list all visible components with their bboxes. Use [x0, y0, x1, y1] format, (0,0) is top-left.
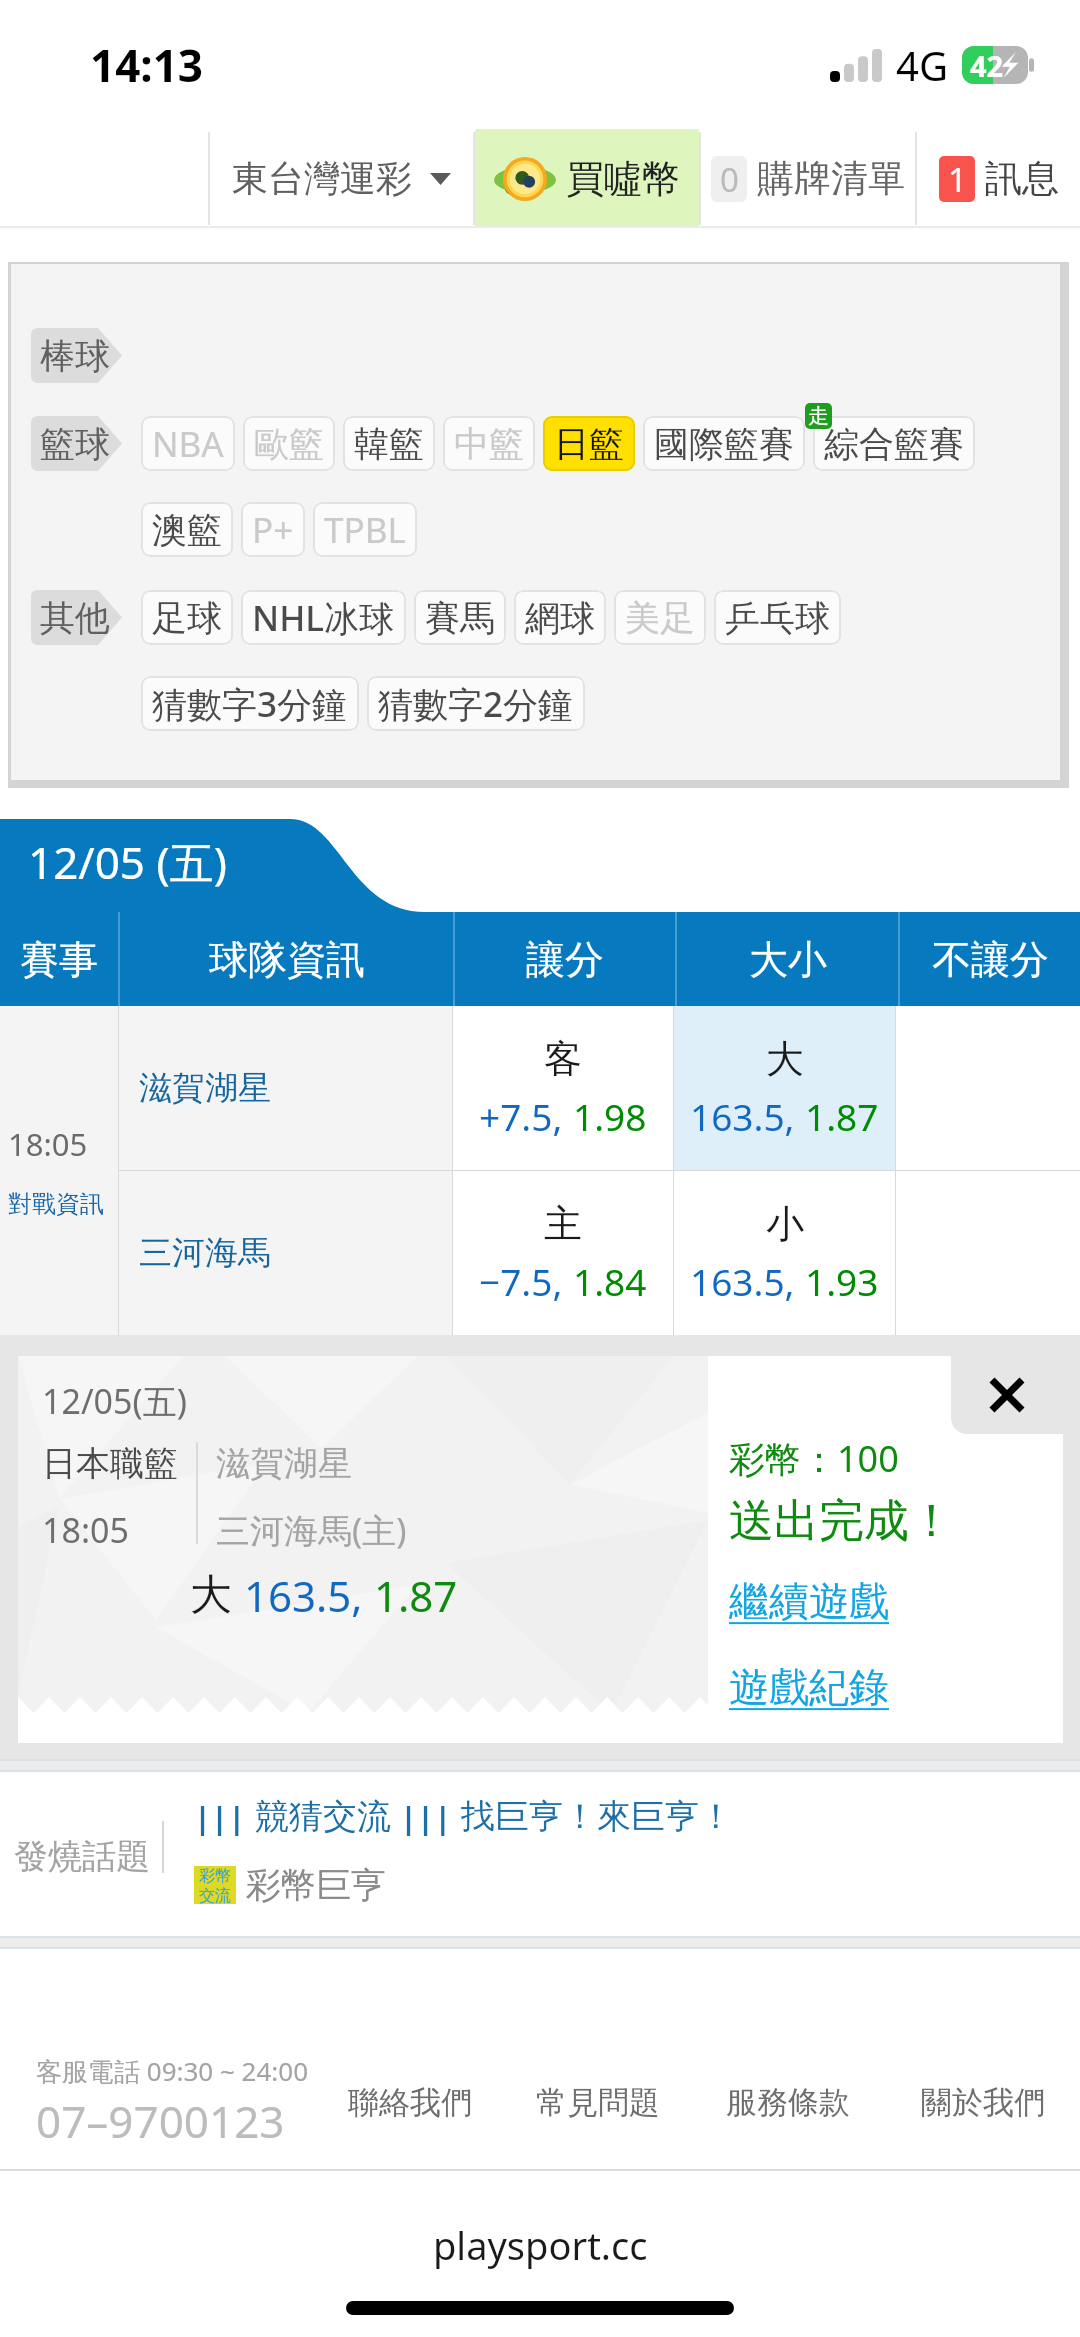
button[interactable]: 澳籃 — [141, 502, 233, 557]
button[interactable]: 常見問題 — [536, 2083, 660, 2122]
staticText: 乒乓球 — [725, 596, 830, 640]
staticText: 買噓幣 — [566, 155, 680, 203]
staticText: 07–9700123 — [36, 2091, 285, 2151]
staticText: 賽事 — [20, 935, 98, 984]
staticText: 1.84 — [573, 1256, 647, 1306]
button[interactable]: 0 — [701, 129, 915, 228]
staticText: playsport.cc — [433, 2219, 648, 2271]
staticText: 國際籃賽 — [654, 422, 794, 466]
button[interactable]: 遊戲紀錄 — [729, 1662, 889, 1712]
staticText: 1.93 — [805, 1256, 879, 1306]
staticText: 韓籃 — [354, 422, 424, 466]
button[interactable]: 三河海馬 — [119, 1171, 452, 1335]
button[interactable]: 猜數字3分鐘 — [141, 676, 359, 731]
staticText: 小 — [766, 1200, 804, 1248]
button[interactable]: Close — [951, 1356, 1063, 1434]
button[interactable]: 美足 — [614, 590, 706, 645]
staticText: 大 — [190, 1569, 232, 1622]
staticText: 日本職籃 — [42, 1442, 178, 1485]
staticText: 交流 — [199, 1886, 231, 1904]
button[interactable]: 猜數字2分鐘 — [367, 676, 585, 731]
button[interactable]: 韓籃 — [343, 416, 435, 471]
staticText: 棒球 — [40, 334, 110, 378]
staticText: 澳籃 — [152, 508, 222, 552]
staticText: NBA — [152, 420, 224, 468]
staticText: 東台灣運彩 — [232, 156, 412, 201]
button[interactable]: 中籃 — [443, 416, 535, 471]
staticText: 滋賀湖星 — [139, 1067, 271, 1109]
button[interactable]: 服務條款 — [726, 2083, 850, 2122]
staticText: 彩幣 — [199, 1866, 231, 1886]
button[interactable]: 主 — [453, 1171, 673, 1335]
staticText: 走 — [808, 403, 829, 429]
button[interactable]: 關於我們 — [921, 2083, 1045, 2122]
staticText: 彩幣巨亨 — [246, 1863, 386, 1907]
button[interactable]: 小 — [674, 1171, 895, 1335]
staticText: 訊息 — [985, 155, 1059, 202]
staticText: 日籃 — [554, 422, 624, 466]
staticText: NHL冰球 — [252, 594, 395, 642]
staticText: 賽馬 — [425, 596, 495, 640]
staticText: 1.87 — [374, 1567, 458, 1624]
button[interactable]: 賽馬 — [414, 590, 506, 645]
staticText: 163.5, — [244, 1567, 363, 1624]
staticText: 大小 — [749, 935, 827, 984]
button[interactable]: 大 — [674, 1006, 895, 1170]
button[interactable]: 1 — [917, 129, 1080, 228]
staticText: 14:13 — [90, 35, 204, 95]
staticText: 1 — [948, 157, 967, 202]
button[interactable]: ||| — [194, 1795, 733, 1838]
button[interactable]: 客 — [453, 1006, 673, 1170]
staticText: 163.5, — [690, 1256, 795, 1306]
staticText: P+ — [252, 506, 294, 554]
button[interactable]: 對戰資訊 — [8, 1189, 104, 1219]
staticText: 中籃 — [454, 422, 524, 466]
button[interactable]: 籃球 — [31, 416, 122, 471]
staticText: 足球 — [152, 596, 222, 640]
button[interactable]: 買噓幣 — [475, 129, 699, 228]
staticText: 猜數字2分鐘 — [378, 680, 574, 728]
button[interactable]: 乒乓球 — [714, 590, 841, 645]
button[interactable]: 國際籃賽 — [643, 416, 805, 471]
button[interactable]: 東台灣運彩 — [210, 129, 473, 228]
staticText: ||| — [400, 1796, 452, 1838]
staticText: 不讓分 — [932, 935, 1049, 984]
button[interactable]: TPBL — [313, 502, 417, 557]
staticText: 4G — [896, 38, 948, 92]
button[interactable]: 歐籃 — [243, 416, 335, 471]
staticText: 滋賀湖星 — [216, 1442, 352, 1485]
staticText: 12/05(五) — [42, 1378, 187, 1424]
staticText: 12/05 (五) — [28, 832, 227, 892]
staticText: 客服電話 09:30 ~ 24:00 — [36, 2053, 309, 2089]
staticText: 彩幣：100 — [729, 1434, 899, 1483]
staticText: +7.5, — [479, 1091, 563, 1141]
button[interactable]: 聯絡我們 — [348, 2083, 472, 2122]
button[interactable]: 日籃 — [543, 416, 635, 471]
button[interactable]: 滋賀湖星 — [119, 1006, 452, 1170]
button[interactable]: NHL冰球 — [241, 590, 406, 645]
staticText: 網球 — [525, 596, 595, 640]
button[interactable]: 棒球 — [31, 328, 122, 383]
button[interactable]: 足球 — [141, 590, 233, 645]
button[interactable]: P+ — [241, 502, 305, 557]
button[interactable]: NBA — [141, 416, 235, 471]
staticText: 主 — [544, 1200, 582, 1248]
staticText: 42 — [970, 46, 1004, 84]
button[interactable]: 網球 — [514, 590, 606, 645]
staticText: 籃球 — [40, 422, 110, 466]
button[interactable]: 彩幣 — [194, 1863, 386, 1907]
staticText: −7.5, — [479, 1256, 563, 1306]
staticText: 美足 — [625, 596, 695, 640]
staticText: 球隊資訊 — [209, 935, 365, 984]
staticText: 綜合籃賽 — [824, 422, 964, 466]
staticText: 發燒話題 — [14, 1835, 150, 1878]
staticText: 其他 — [40, 596, 110, 640]
button[interactable]: 綜合籃賽 — [813, 416, 975, 471]
staticText: 購牌清單 — [757, 155, 905, 202]
button[interactable]: 其他 — [31, 590, 122, 645]
button[interactable]: 繼續遊戲 — [729, 1576, 889, 1626]
